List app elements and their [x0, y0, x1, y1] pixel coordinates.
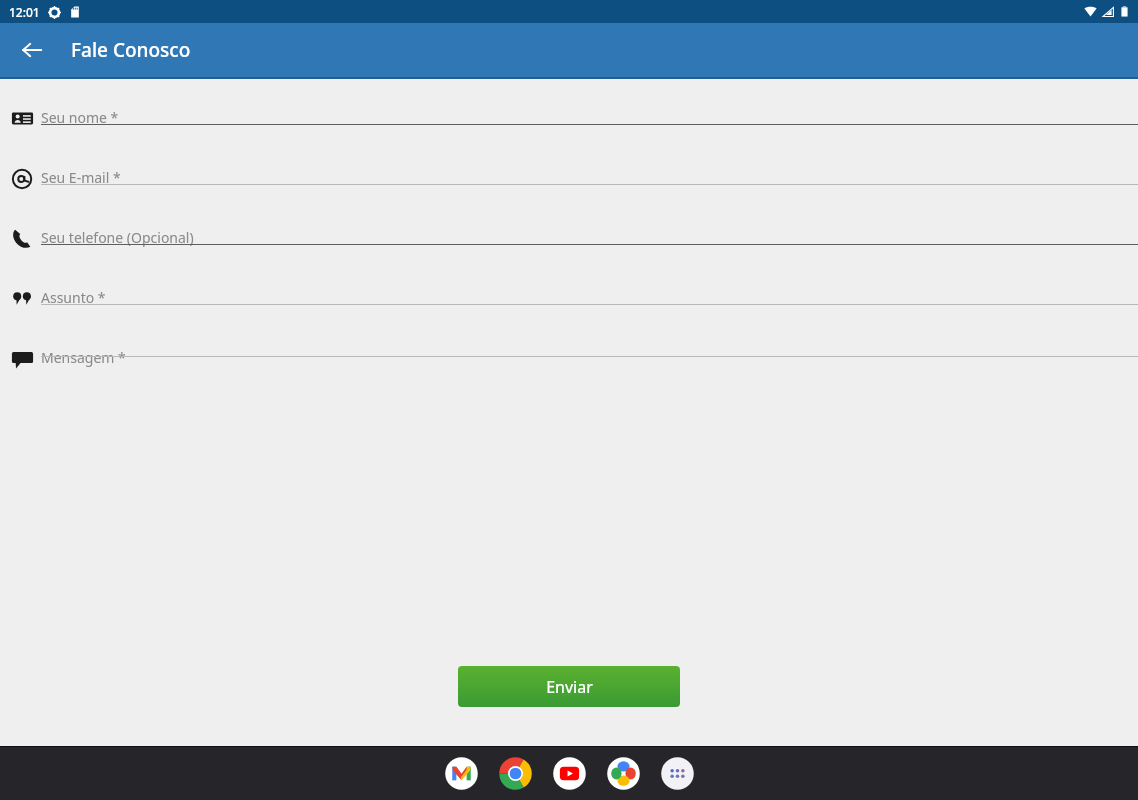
button[interactable]: Gmail	[443, 755, 480, 792]
staticText: Enviar	[546, 676, 593, 698]
button[interactable]: Photos	[605, 755, 642, 792]
button[interactable]: Seu E-mail *	[0, 165, 1138, 206]
button[interactable]: Enviar	[458, 666, 680, 707]
staticText: 12:01	[9, 4, 40, 20]
staticText: Seu nome *	[41, 108, 119, 127]
button[interactable]: Back	[10, 28, 54, 72]
button[interactable]: YouTube	[551, 755, 588, 792]
button[interactable]: Mensagem *	[0, 345, 1138, 386]
staticText: Assunto *	[41, 288, 106, 307]
button[interactable]: All apps	[659, 755, 696, 792]
button[interactable]: Seu telefone (Opcional)	[0, 225, 1138, 266]
button[interactable]: Seu nome *	[0, 105, 1138, 146]
staticText: Fale Conosco	[71, 37, 191, 63]
staticText: Mensagem *	[41, 348, 126, 367]
button[interactable]: Chrome	[497, 755, 534, 792]
button[interactable]: Assunto *	[0, 285, 1138, 326]
staticText: Seu E-mail *	[41, 168, 121, 187]
staticText: Seu telefone (Opcional)	[41, 228, 194, 247]
